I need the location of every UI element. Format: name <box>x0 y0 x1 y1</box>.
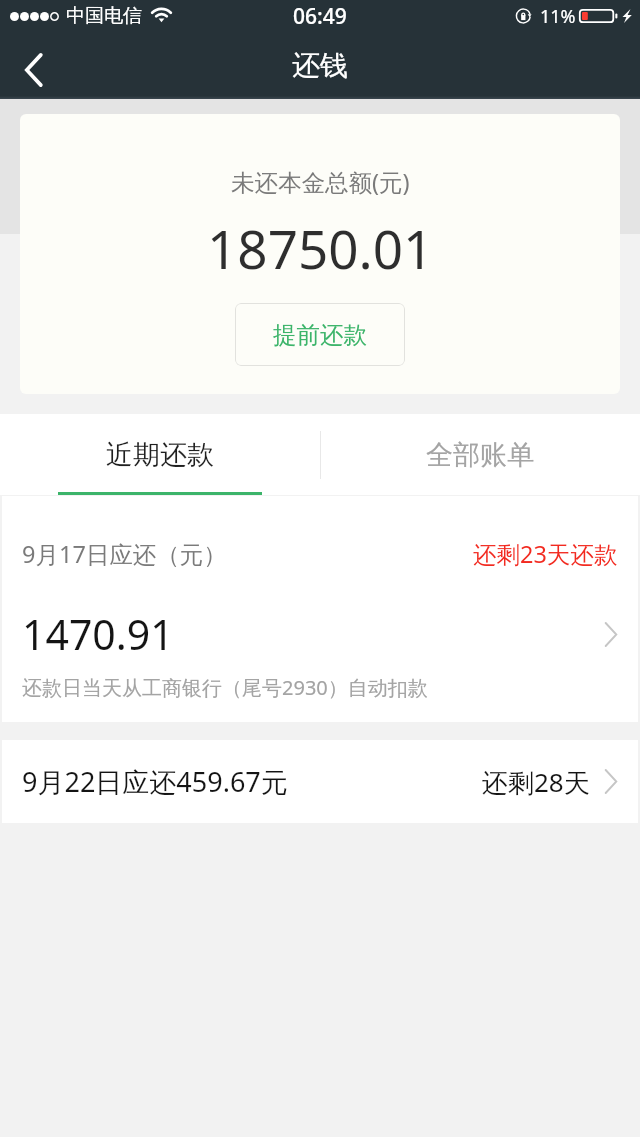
staticText: 9月22日应还459.67元 <box>22 763 288 800</box>
staticText: 未还本金总额(元) <box>231 166 410 198</box>
staticText: 还剩28天 <box>482 764 590 800</box>
staticText: 提前还款 <box>273 320 367 350</box>
button[interactable]: Back <box>0 40 68 99</box>
staticText: 1470.91 <box>22 606 174 662</box>
staticText: 中国电信 <box>66 4 142 28</box>
staticText: 还钱 <box>292 48 348 83</box>
staticText: 还剩23天还款 <box>473 538 618 570</box>
staticText: 9月17日应还（元） <box>22 538 227 570</box>
staticText: 18750.01 <box>207 212 434 284</box>
button[interactable]: 全部账单 <box>320 414 640 495</box>
staticText: 还款日当天从工商银行（尾号2930）自动扣款 <box>22 674 428 701</box>
button[interactable]: 近期还款 <box>0 414 320 495</box>
button[interactable]: 9月17日应还（元） <box>2 496 638 722</box>
staticText: 近期还款 <box>106 438 214 472</box>
staticText: 全部账单 <box>426 438 534 472</box>
button[interactable]: 9月22日应还459.67元 <box>2 740 638 823</box>
button[interactable]: 提前还款 <box>235 303 405 366</box>
staticText: 06:49 <box>293 2 347 31</box>
staticText: 11% <box>540 4 576 29</box>
